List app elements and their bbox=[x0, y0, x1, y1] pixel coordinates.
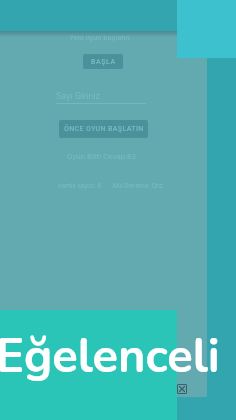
button[interactable]: ÖNCE OYUN BAŞLATIN bbox=[59, 120, 148, 138]
staticText: ÖNCE OYUN BAŞLATIN bbox=[64, 125, 144, 133]
staticText: Yeni oyun başlatın bbox=[0, 33, 199, 42]
button[interactable]: Close ad bbox=[177, 384, 187, 394]
staticText: hamle sayısı: 8 bbox=[58, 182, 118, 190]
staticText: BAŞLA bbox=[91, 58, 116, 66]
staticText: Akıl Deneme: Qnz bbox=[112, 182, 172, 190]
staticText: Oyun Bitti Cevap:83 bbox=[0, 152, 203, 161]
staticText: Sayı Giriniz bbox=[56, 91, 156, 102]
button[interactable]: BAŞLA bbox=[83, 54, 123, 69]
staticText: Eğelenceli bbox=[0, 324, 220, 388]
